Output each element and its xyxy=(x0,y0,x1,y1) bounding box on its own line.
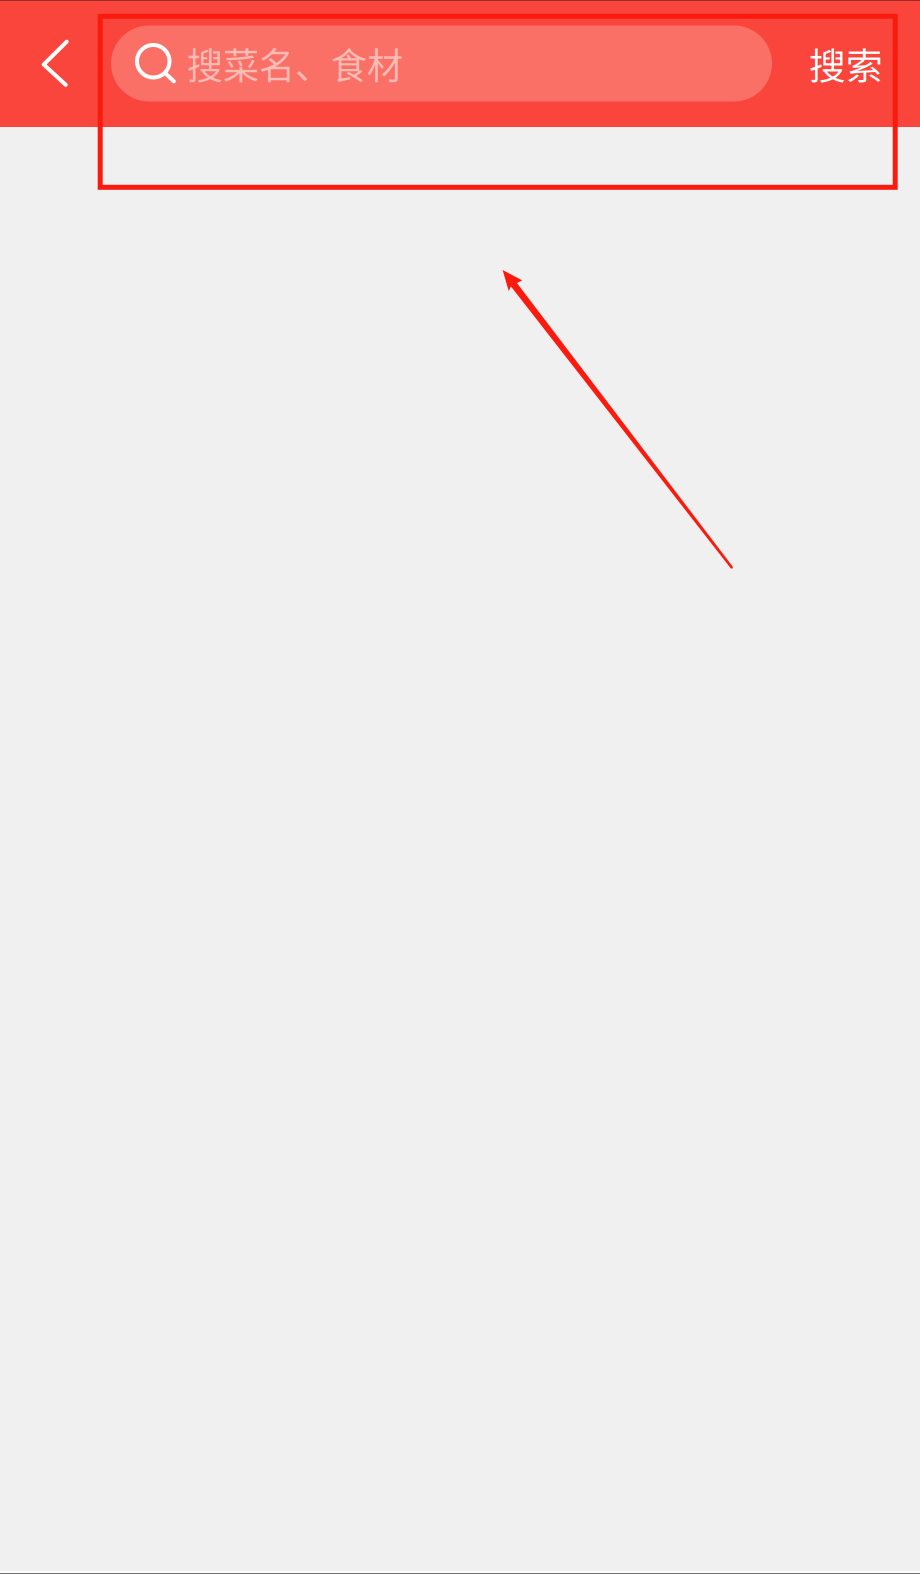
button[interactable]: 搜菜名、食材 xyxy=(111,0,772,127)
button[interactable]: Back xyxy=(0,0,111,127)
staticText: 搜索 xyxy=(809,37,883,90)
button[interactable]: 搜索 xyxy=(772,0,920,127)
staticText: 搜菜名、食材 xyxy=(187,37,403,89)
